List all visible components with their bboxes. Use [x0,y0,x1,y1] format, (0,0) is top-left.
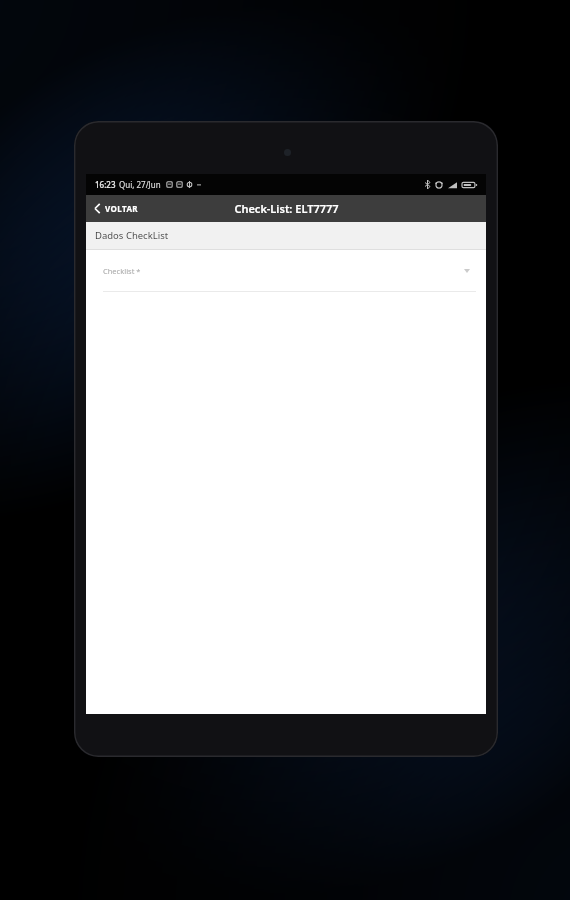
button[interactable]: Dados CheckList [86,222,486,249]
staticText: Checklist * [103,266,141,276]
staticText: VOLTAR [105,203,138,214]
other: Abrir lista de checklists [462,266,472,276]
staticText: Check-List: ELT7777 [234,201,339,216]
button[interactable]: VOLTAR [86,195,148,222]
button[interactable]: Checklist * [86,250,486,292]
staticText: Qui, 27/Jun [119,179,161,190]
staticText: Dados CheckList [95,229,169,242]
staticText: 16:23 [95,179,116,190]
